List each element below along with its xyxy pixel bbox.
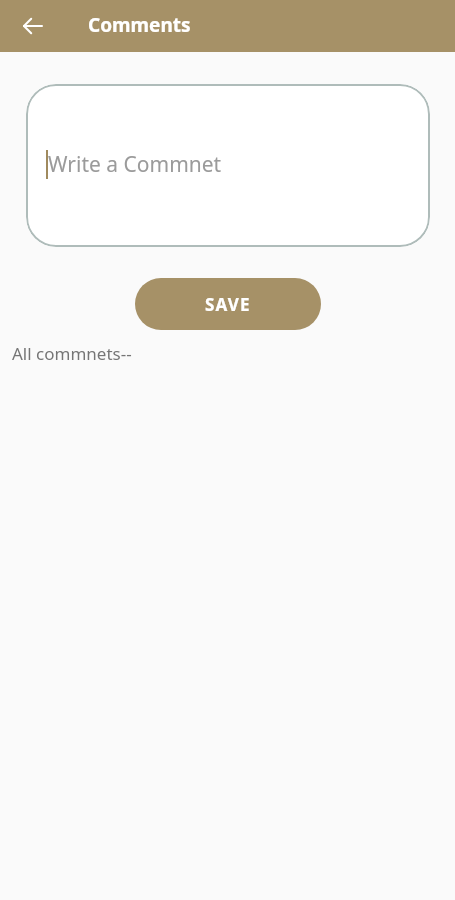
staticText: All commnets--: [12, 342, 132, 365]
button[interactable]: SAVE: [135, 278, 321, 330]
staticText: Write a Commnet: [48, 150, 222, 179]
button[interactable]: Write a Commnet: [26, 84, 430, 247]
button[interactable]: Back: [11, 4, 55, 48]
staticText: SAVE: [205, 293, 251, 316]
staticText: Comments: [88, 12, 191, 38]
